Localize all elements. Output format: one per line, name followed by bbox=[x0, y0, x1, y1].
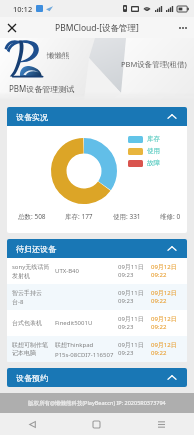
staticText: 联想可制作笔记本电脑 bbox=[12, 341, 52, 357]
button[interactable]: 设备预约 bbox=[7, 368, 187, 387]
staticText: 09:23 bbox=[118, 297, 134, 305]
staticText: PBM设备管理测试 bbox=[9, 83, 75, 94]
staticText: 维修: 0 bbox=[160, 212, 181, 221]
button[interactable]: 智云手持云台-8 bbox=[7, 284, 187, 310]
staticText: 总数: 508 bbox=[18, 212, 46, 221]
staticText: 懒懒熊 bbox=[47, 51, 70, 60]
button[interactable]: Close bbox=[3, 19, 20, 36]
staticText: PBM设备管理(租借) bbox=[121, 59, 187, 69]
staticText: 09月12日 bbox=[151, 289, 177, 297]
staticText: Finedit5001U bbox=[55, 319, 118, 327]
staticText: 09月11日 bbox=[118, 289, 144, 297]
staticText: 故障 bbox=[147, 159, 160, 167]
staticText: 设备预约 bbox=[16, 373, 48, 383]
staticText: sony无线话筒发射机 bbox=[12, 263, 52, 280]
staticText: 版权所有@懒懒熊科技(PlayBear.cn) IP: 20205R037379… bbox=[28, 399, 166, 407]
staticText: UTX-B40 bbox=[55, 267, 118, 275]
button[interactable]: More options bbox=[174, 19, 191, 36]
staticText: 待归还设备 bbox=[16, 244, 56, 254]
button[interactable]: sony无线话筒发射机 bbox=[7, 258, 187, 284]
staticText: 09月11日 bbox=[118, 315, 144, 323]
staticText: 09月12日 bbox=[151, 341, 177, 349]
staticText: 09:23 bbox=[118, 271, 134, 279]
button[interactable]: 联想可制作笔记本电脑 bbox=[7, 336, 187, 362]
staticText: 库存: 177 bbox=[65, 212, 93, 221]
staticText: 09月11日 bbox=[118, 341, 144, 349]
staticText: 台式包装机 bbox=[12, 319, 52, 327]
staticText: 09:22 bbox=[151, 271, 167, 279]
button[interactable]: 设备实况 bbox=[7, 107, 187, 126]
staticText: 设备实况 bbox=[16, 112, 48, 122]
staticText: 智云手持云台-8 bbox=[12, 289, 52, 305]
staticText: 使用: 331 bbox=[113, 212, 141, 221]
staticText: 09:22 bbox=[151, 297, 167, 305]
staticText: 09月12日 bbox=[151, 315, 177, 323]
staticText: 09月12日 bbox=[151, 263, 177, 271]
staticText: PBMCloud-[设备管理] bbox=[55, 22, 139, 34]
staticText: 09:22 bbox=[151, 323, 167, 331]
button[interactable]: 待归还设备 bbox=[7, 239, 187, 258]
staticText: 使用 bbox=[147, 147, 160, 155]
button[interactable]: Home bbox=[64, 413, 129, 435]
staticText: 库存 bbox=[147, 135, 160, 143]
button[interactable]: Recent apps bbox=[129, 413, 194, 435]
staticText: 09月11日 bbox=[118, 263, 144, 271]
staticText: 09:22 bbox=[151, 349, 167, 357]
button[interactable]: 台式包装机 bbox=[7, 310, 187, 336]
staticText: 09:23 bbox=[118, 323, 134, 331]
button[interactable]: Back bbox=[0, 413, 64, 435]
staticText: 09:23 bbox=[118, 349, 134, 357]
staticText: 10:12 bbox=[13, 4, 33, 14]
staticText: 联想Thinkpad P15s-08CDI7-116507 bbox=[55, 341, 118, 358]
